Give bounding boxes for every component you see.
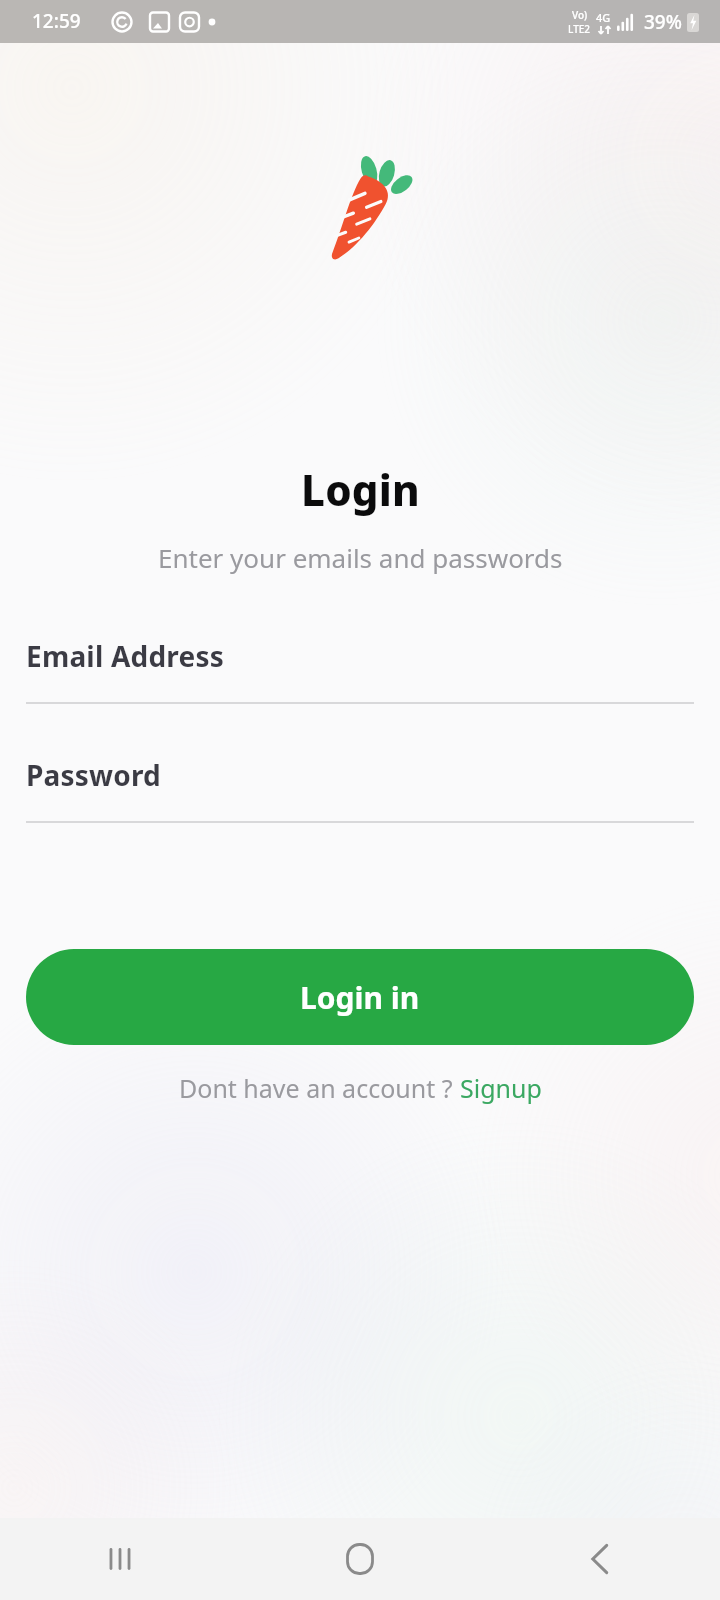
button[interactable]: Password (26, 756, 694, 823)
staticText: Login (301, 461, 420, 518)
button[interactable]: Back (480, 1518, 720, 1600)
staticText: Dont have an account ? (179, 1071, 460, 1105)
staticText: Email Address (26, 637, 224, 675)
staticText: Enter your emails and passwords (158, 540, 563, 575)
button[interactable]: Recent apps (0, 1518, 240, 1600)
button[interactable]: Home (240, 1518, 480, 1600)
staticText: LTE2 (568, 22, 591, 36)
button[interactable]: Signup (460, 1071, 542, 1105)
staticText: 12:59 (32, 8, 81, 34)
button[interactable]: Login in (26, 949, 694, 1045)
staticText: Vo) (572, 8, 588, 22)
staticText: Signup (460, 1071, 542, 1105)
staticText: Password (26, 756, 161, 794)
staticText: Login in (300, 977, 420, 1018)
staticText: 39% (644, 9, 682, 35)
button[interactable]: Email Address (26, 637, 694, 704)
staticText: 4G (596, 10, 611, 25)
